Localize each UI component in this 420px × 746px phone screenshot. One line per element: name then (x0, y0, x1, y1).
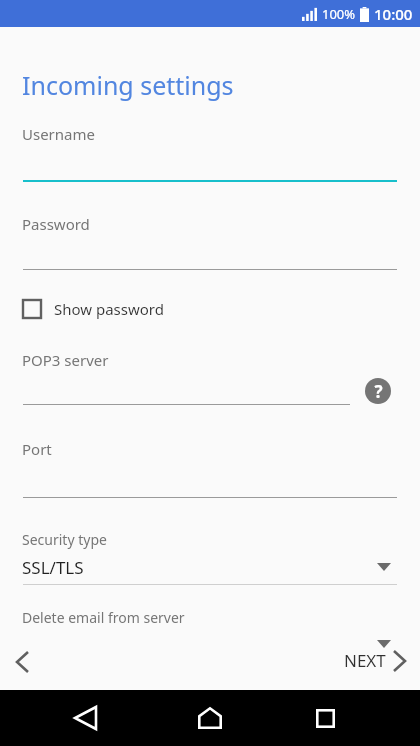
staticText: SSL/TLS (22, 556, 84, 579)
button[interactable]: Show password (22, 299, 164, 319)
staticText: Password (22, 214, 90, 234)
staticText: Security type (22, 530, 107, 549)
staticText: 10:00 (374, 4, 413, 24)
button[interactable]: Previous (2, 642, 42, 682)
button[interactable]: Home (188, 696, 232, 740)
button[interactable]: Delete email from server options (377, 640, 391, 648)
staticText: Show password (54, 299, 164, 319)
button[interactable]: SSL/TLS (0, 552, 420, 586)
staticText: ? (374, 380, 383, 403)
button[interactable]: Help (365, 378, 391, 404)
button[interactable]: NEXT (344, 649, 405, 672)
button[interactable]: Back (75, 690, 420, 746)
button[interactable]: Recents (303, 696, 347, 740)
staticText: NEXT (344, 649, 386, 672)
staticText: POP3 server (22, 350, 109, 370)
staticText: Username (22, 124, 95, 144)
staticText: Incoming settings (22, 68, 234, 102)
staticText: Delete email from server (22, 608, 185, 627)
staticText: 100% (322, 5, 356, 23)
staticText: Port (22, 439, 52, 459)
